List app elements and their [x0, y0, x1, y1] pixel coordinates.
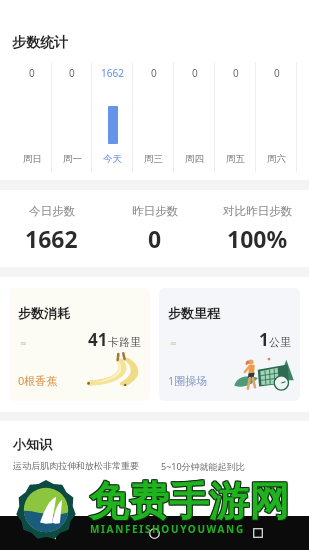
staticText: 0	[148, 223, 162, 254]
staticText: 免费手游网	[90, 477, 290, 527]
staticText: 免费手游网	[89, 475, 289, 525]
staticText: 步数里程	[168, 305, 220, 321]
staticText: ≈	[20, 339, 27, 348]
staticText: 1圈操场	[168, 373, 208, 388]
button[interactable]: 0	[256, 62, 297, 172]
staticText: 100%	[227, 223, 288, 254]
button[interactable]: 今日步数	[0, 190, 103, 267]
staticText: 免费手游网	[88, 476, 288, 526]
button[interactable]: 对比昨日步数	[206, 190, 309, 267]
staticText: ≈	[170, 339, 177, 348]
staticText: 0	[233, 66, 239, 80]
staticText: 免费手游网	[89, 477, 289, 527]
staticText: 41	[88, 328, 108, 351]
staticText: 1662	[101, 66, 124, 80]
button[interactable]: 0	[52, 62, 92, 172]
staticText: 今天	[103, 153, 122, 165]
staticText: 周六	[267, 153, 286, 165]
staticText: 0	[192, 66, 198, 80]
staticText: 步数统计	[12, 34, 68, 52]
staticText: 0根香蕉	[18, 373, 58, 388]
staticText: 运动后肌肉拉伸和放松非常重要	[13, 460, 147, 471]
staticText: 周五	[226, 153, 245, 165]
button[interactable]: 步数消耗	[9, 288, 150, 401]
staticText: 周四	[185, 153, 204, 165]
button[interactable]: 步数里程	[159, 288, 300, 401]
staticText: 0	[274, 66, 280, 80]
button[interactable]: Home	[103, 516, 206, 550]
staticText: 免费手游网	[88, 477, 288, 527]
button[interactable]: 昨日步数	[103, 190, 206, 267]
staticText: 免费手游网	[89, 476, 289, 526]
staticText: 1	[259, 328, 269, 351]
staticText: 0	[151, 66, 157, 80]
staticText: 周三	[144, 153, 163, 165]
staticText: 卡路里	[108, 335, 141, 349]
staticText: 小知识	[13, 436, 52, 452]
staticText: 周日	[23, 153, 42, 165]
button[interactable]: 1662	[92, 62, 133, 172]
staticText: 步数消耗	[18, 305, 70, 321]
button[interactable]: Back	[0, 516, 103, 550]
staticText: 昨日步数	[132, 204, 178, 218]
button[interactable]: 0	[215, 62, 256, 172]
button[interactable]: Recents	[206, 516, 309, 550]
staticText: 免费手游网	[88, 475, 288, 525]
staticText: 周一	[63, 153, 82, 165]
staticText: MIANFEISHOUYOUWANG	[90, 522, 245, 536]
staticText: 免费手游网	[90, 476, 290, 526]
staticText: 公里	[269, 335, 291, 349]
staticText: 今日步数	[29, 204, 75, 218]
staticText: 5~10分钟就能起到比	[161, 460, 296, 472]
button[interactable]: 0	[12, 62, 52, 172]
button[interactable]: 0	[133, 62, 174, 172]
staticText: 1662	[25, 223, 78, 254]
staticText: 0	[29, 66, 35, 80]
staticText: 免费手游网	[90, 475, 290, 525]
button[interactable]: 0	[174, 62, 215, 172]
staticText: 对比昨日步数	[223, 204, 292, 218]
staticText: 0	[69, 66, 75, 80]
